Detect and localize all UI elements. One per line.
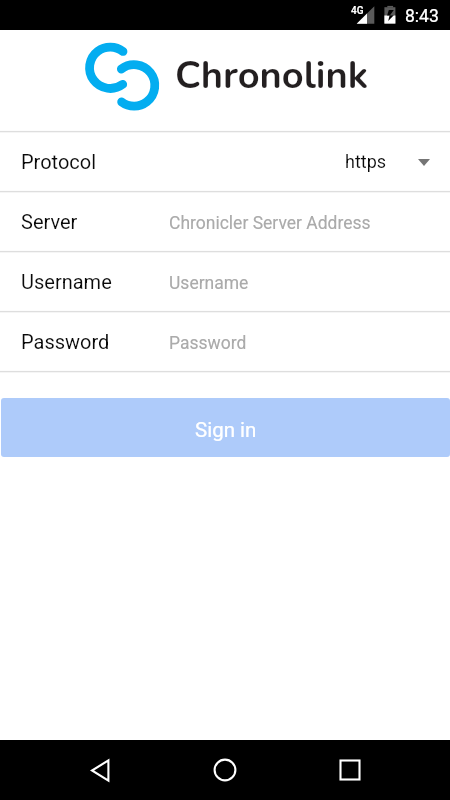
staticText: Sign in <box>195 418 257 442</box>
staticText: Chronicler Server Address <box>169 213 371 234</box>
button[interactable]: Back <box>70 740 130 800</box>
staticText: Chronolink <box>175 50 369 102</box>
button[interactable]: Sign in <box>1 398 450 457</box>
staticText: Password <box>169 333 247 354</box>
staticText: Username <box>21 270 112 293</box>
staticText: 8:43 <box>405 6 439 27</box>
staticText: Username <box>169 273 249 294</box>
button[interactable]: Protocol <box>0 132 450 192</box>
button[interactable]: Server <box>0 192 450 252</box>
staticText: Server <box>21 210 78 233</box>
staticText: Password <box>21 330 110 353</box>
button[interactable]: Username <box>0 252 450 312</box>
button[interactable]: Password <box>0 312 450 372</box>
staticText: https <box>345 151 387 172</box>
staticText: Protocol <box>21 150 97 173</box>
staticText: 4G <box>351 5 364 17</box>
button[interactable]: Recent apps <box>320 740 380 800</box>
button[interactable]: Home <box>195 740 255 800</box>
